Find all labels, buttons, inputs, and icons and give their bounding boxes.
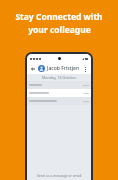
staticText: Monday, 14 October [42, 75, 77, 80]
staticText: your colleague [28, 24, 91, 36]
button[interactable] [27, 81, 91, 89]
button[interactable]: Contact avatar [38, 65, 45, 72]
button[interactable]: Back [30, 66, 36, 72]
staticText: Send us a message or email [37, 173, 82, 178]
staticText: Stay Connected with [15, 11, 103, 23]
button[interactable]: More options [82, 66, 88, 72]
button[interactable]: Back [27, 63, 91, 74]
button[interactable] [27, 97, 91, 105]
staticText: Jacob Fristjen [47, 65, 80, 72]
button[interactable] [27, 89, 91, 97]
